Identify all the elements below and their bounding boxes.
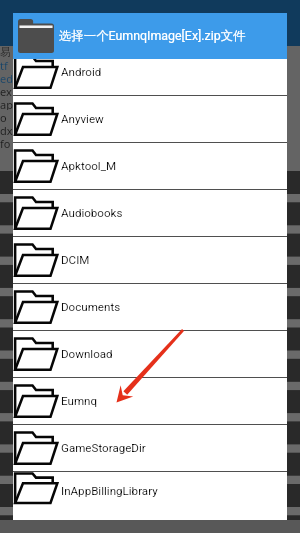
button[interactable]: Download: [13, 331, 287, 377]
staticText: Download: [61, 347, 113, 361]
staticText: tfn: [0, 58, 13, 71]
button[interactable]: Anyview: [13, 96, 287, 142]
staticText: ed: [0, 71, 13, 84]
staticText: dx: [0, 123, 13, 136]
staticText: for: [0, 136, 13, 149]
button[interactable]: Eumnq: [13, 378, 287, 424]
button[interactable]: DCIM: [13, 237, 287, 283]
staticText: Anyview: [61, 112, 104, 126]
staticText: Android: [61, 65, 102, 79]
button[interactable]: Documents: [13, 284, 287, 330]
staticText: 易: [0, 45, 11, 58]
staticText: ob: [0, 110, 13, 123]
staticText: InAppBillingLibrary: [61, 484, 158, 498]
other: Annotation arrow: [0, 0, 300, 533]
button[interactable]: 选择一个EumnqImage[Ex].zip文件: [13, 13, 287, 59]
staticText: GameStorageDir: [61, 441, 146, 455]
staticText: ap: [0, 97, 13, 110]
button[interactable]: Audiobooks: [13, 190, 287, 236]
staticText: Documents: [61, 300, 121, 314]
staticText: Apktool_M: [61, 159, 117, 173]
staticText: DCIM: [61, 253, 90, 267]
button[interactable]: InAppBillingLibrary: [13, 472, 287, 510]
staticText: 选择一个EumnqImage[Ex].zip文件: [59, 28, 246, 44]
staticText: Audiobooks: [61, 206, 123, 220]
staticText: Eumnq: [61, 394, 98, 408]
button[interactable]: Apktool_M: [13, 143, 287, 189]
button[interactable]: Android: [13, 59, 287, 95]
staticText: ex: [0, 84, 12, 97]
button[interactable]: GameStorageDir: [13, 425, 287, 471]
